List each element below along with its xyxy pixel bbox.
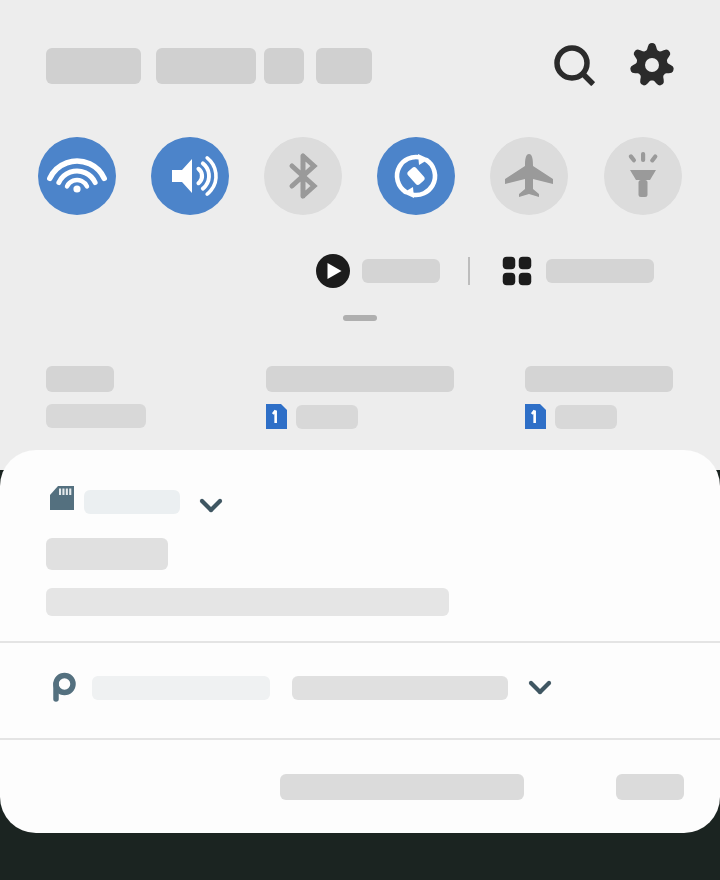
button[interactable]	[310, 254, 446, 288]
button[interactable]	[268, 764, 536, 810]
button[interactable]: Auto rotate	[377, 137, 455, 215]
button[interactable]: Expand	[0, 450, 720, 641]
button[interactable]	[604, 764, 696, 810]
button[interactable]	[266, 366, 454, 429]
button[interactable]: Sound	[151, 137, 229, 215]
button[interactable]	[46, 366, 146, 428]
button[interactable]: Settings	[624, 37, 680, 93]
button[interactable]	[494, 254, 660, 288]
button[interactable]: Expand	[192, 486, 230, 524]
button[interactable]: Search	[545, 37, 601, 93]
button[interactable]: Bluetooth	[264, 137, 342, 215]
button[interactable]: Expand	[0, 642, 720, 738]
button[interactable]	[525, 366, 673, 429]
button[interactable]: Expand	[521, 668, 559, 706]
button[interactable]: Wi-Fi	[38, 137, 116, 215]
button[interactable]: Flashlight	[604, 137, 682, 215]
button[interactable]	[343, 315, 377, 321]
button[interactable]: Airplane mode	[490, 137, 568, 215]
